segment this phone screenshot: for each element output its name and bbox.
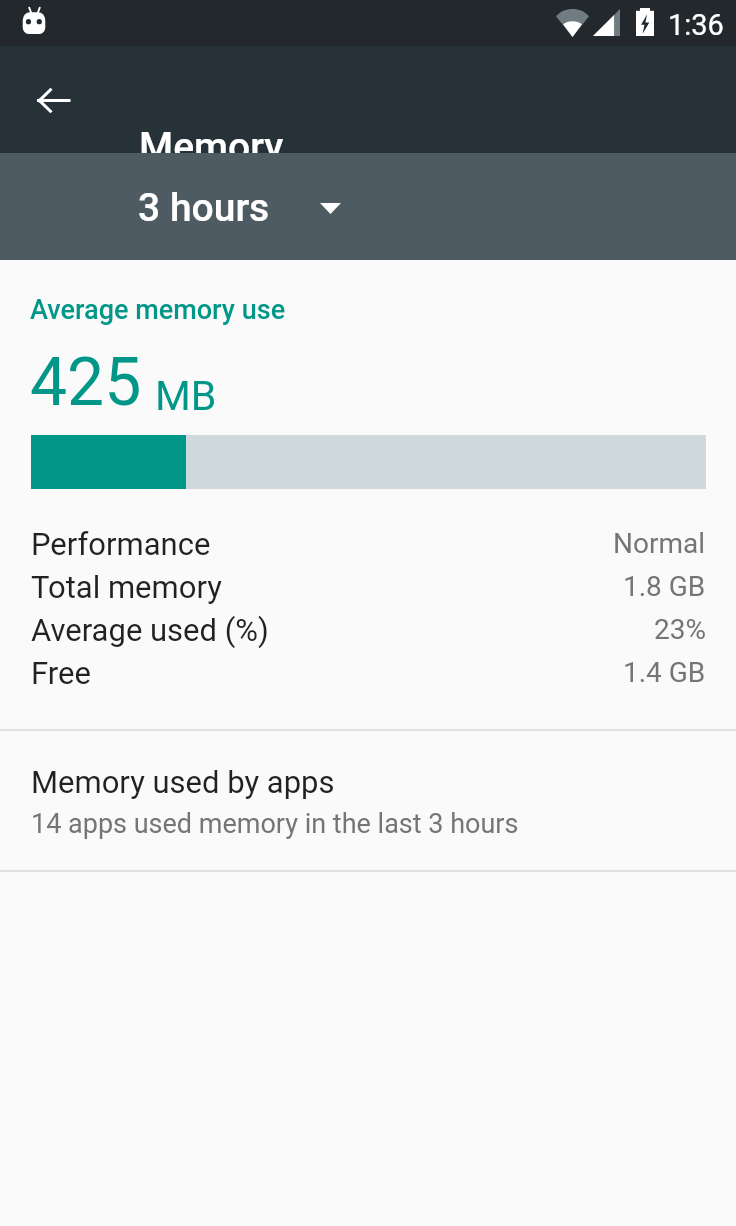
staticText: 1.4 GB bbox=[623, 656, 706, 689]
staticText: 23% bbox=[654, 613, 706, 646]
staticText: 3 hours bbox=[138, 185, 270, 231]
button[interactable]: 3 hours bbox=[138, 165, 341, 249]
staticText: 14 apps used memory in the last 3 hours bbox=[31, 808, 519, 840]
staticText: Normal bbox=[613, 527, 706, 560]
staticText: Free bbox=[31, 655, 91, 691]
button[interactable]: Memory used by apps bbox=[0, 731, 736, 870]
staticText: Total memory bbox=[31, 569, 222, 605]
staticText: Average used (%) bbox=[31, 612, 269, 648]
staticText: 1:36 bbox=[668, 8, 724, 42]
staticText: MB bbox=[155, 372, 217, 420]
staticText: Memory bbox=[139, 124, 284, 170]
staticText: Memory used by apps bbox=[31, 764, 335, 800]
staticText: Performance bbox=[31, 526, 211, 562]
staticText: Average memory use bbox=[30, 294, 286, 326]
button[interactable]: Navigate up bbox=[8, 55, 98, 145]
staticText: 1.8 GB bbox=[623, 570, 706, 603]
staticText: 425 bbox=[30, 344, 142, 421]
